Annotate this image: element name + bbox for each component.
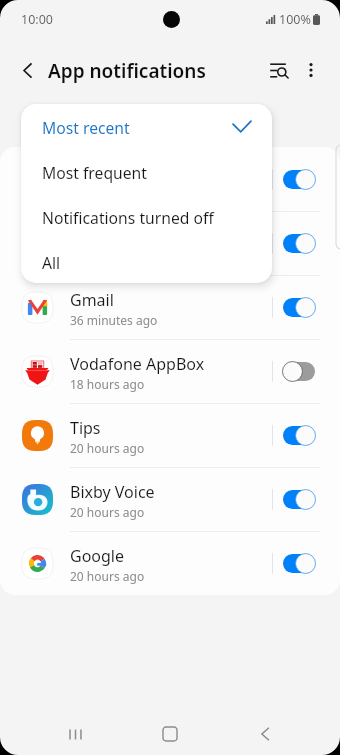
staticText: Gmail (70, 289, 114, 311)
button[interactable]: Notifications turned off (21, 195, 272, 240)
staticText: All (42, 252, 61, 273)
button[interactable]: All (21, 240, 272, 283)
button[interactable]: Back (246, 715, 284, 753)
button[interactable]: Toggle notifications for Phone (283, 234, 315, 253)
staticText: Google (70, 545, 125, 567)
button[interactable]: Toggle notifications for Tips (283, 426, 315, 445)
staticText: 18 hours ago (70, 376, 145, 392)
staticText: Notifications turned off (42, 207, 214, 228)
button[interactable]: Navigate up (9, 52, 45, 88)
button[interactable]: Recent apps (56, 715, 94, 753)
staticText: Most frequent (42, 162, 147, 183)
button[interactable]: Phone (0, 211, 340, 275)
staticText: Most recent (42, 117, 130, 138)
staticText: 20 hours ago (70, 504, 145, 520)
button[interactable]: Toggle notifications for Bixby Voice (283, 490, 315, 509)
button[interactable]: Gmail (0, 275, 340, 339)
button[interactable]: Vodafone AppBox (0, 339, 340, 403)
button[interactable]: Most recent (21, 105, 272, 150)
button[interactable]: Google (0, 531, 340, 595)
button[interactable]: Toggle notifications for Gmail (283, 298, 315, 317)
button[interactable]: Toggle notifications for Google (283, 554, 315, 573)
button[interactable]: Toggle notifications for Messages (283, 170, 315, 189)
button[interactable]: Tips (0, 403, 340, 467)
staticText: Messages (70, 161, 145, 183)
staticText: 10:00 (21, 11, 53, 28)
staticText: Tips (70, 417, 101, 439)
staticText: 100% (279, 11, 311, 28)
button[interactable]: Messages (0, 147, 340, 211)
staticText: Vodafone AppBox (70, 353, 205, 375)
button[interactable]: More options (293, 52, 329, 88)
staticText: 20 hours ago (70, 568, 145, 584)
staticText: 20 hours ago (70, 440, 145, 456)
staticText: 36 minutes ago (70, 312, 158, 328)
button[interactable]: Home (151, 715, 189, 753)
staticText: App notifications (48, 58, 206, 84)
button[interactable]: Most frequent (21, 150, 272, 195)
staticText: Bixby Voice (70, 481, 155, 503)
button[interactable]: Toggle notifications for Vodafone AppBox (283, 362, 315, 381)
button[interactable]: Bixby Voice (0, 467, 340, 531)
button[interactable]: Search (262, 52, 298, 88)
